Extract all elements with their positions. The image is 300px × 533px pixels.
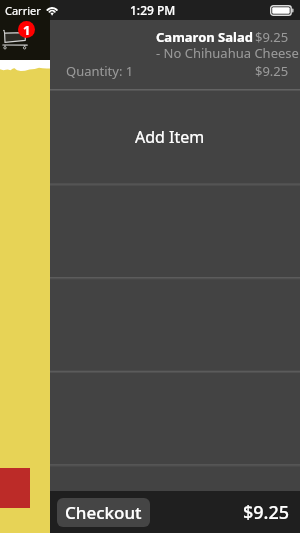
staticText: 1:29 PM <box>130 2 176 18</box>
staticText: 1 <box>23 21 31 38</box>
staticText: $9.25 <box>255 28 289 46</box>
staticText: - No Chihuahua Cheese <box>156 44 299 62</box>
button[interactable]: Add Item <box>50 90 300 184</box>
staticText: Add Item <box>135 126 205 148</box>
staticText: Camaron Salad <box>156 28 253 46</box>
staticText: Quantity: 1 <box>66 62 134 80</box>
button[interactable]: Checkout <box>57 498 150 527</box>
staticText: $9.25 <box>255 62 289 80</box>
staticText: $9.25 <box>243 500 290 525</box>
button[interactable]: $9.25 <box>50 20 300 89</box>
button[interactable]: Shopping cart <box>2 29 30 51</box>
staticText: Checkout <box>65 501 142 524</box>
staticText: Carrier <box>5 3 41 18</box>
